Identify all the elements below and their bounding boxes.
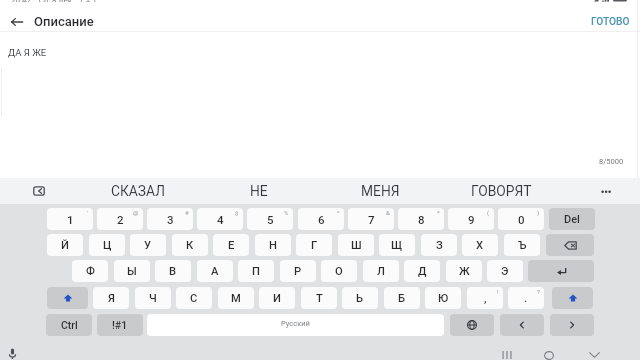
button[interactable]: 4 [197,208,243,230]
button[interactable]: 1 [47,208,93,230]
button[interactable]: М [218,287,254,309]
staticText: # [185,209,189,216]
button[interactable]: Ь [342,287,378,309]
button[interactable]: Н [255,234,291,256]
button[interactable]: 2 [97,208,143,230]
button[interactable]: 0 [498,208,544,230]
staticText: ' [87,209,89,216]
button[interactable]: Р [280,260,316,282]
staticText: @ [133,209,139,216]
button[interactable]: Ф [72,260,108,282]
staticText: $ [235,209,239,216]
staticText: П [252,265,260,278]
staticText: 20:47 Ср, 8 дек. ↑↓↑ [11,0,99,2]
staticText: У [144,239,152,252]
staticText: Ц [103,239,112,252]
button[interactable]: Й [47,234,83,256]
button[interactable]: Т [301,287,337,309]
button[interactable]: 8 [398,208,444,230]
button[interactable] [450,314,494,336]
staticText: ? [537,288,540,295]
staticText: * [437,209,440,216]
button[interactable]: Ю [425,287,461,309]
button[interactable]: Е [213,234,249,256]
button[interactable]: Home [535,347,563,360]
button[interactable]: Ш [338,234,374,256]
button[interactable]: 7 [348,208,394,230]
staticText: . [524,292,528,305]
button[interactable]: Recents [492,347,520,360]
button[interactable]: , [467,287,503,309]
staticText: ! [497,288,499,295]
button[interactable]: НЕ [204,178,314,204]
button[interactable] [546,234,594,256]
button[interactable]: Ctrl [46,314,92,336]
button[interactable]: Русский [147,314,444,336]
button[interactable]: Back [580,347,608,360]
staticText: НЕ [250,183,268,199]
staticText: 4 [217,213,224,226]
button[interactable]: МЕНЯ [325,178,435,204]
staticText: Ъ [518,239,527,252]
button[interactable]: СКАЗАЛ [83,178,193,204]
button[interactable]: О [321,260,357,282]
button[interactable]: Г [296,234,332,256]
staticText: 9 [468,213,475,226]
button[interactable]: 5 [247,208,293,230]
staticText: !#1 [112,319,128,331]
button[interactable]: ГОТОВО [585,12,636,32]
button[interactable]: И [259,287,295,309]
button[interactable]: Back [8,13,25,30]
staticText: З [436,239,443,252]
button[interactable]: Щ [379,234,415,256]
button[interactable]: Э [487,260,523,282]
staticText: % [284,209,289,216]
button[interactable]: 3 [147,208,193,230]
button[interactable] [550,314,594,336]
button[interactable]: Previous suggestions [33,186,45,196]
staticText: , [484,292,487,305]
button[interactable]: В [155,260,191,282]
button[interactable] [528,260,594,282]
staticText: 3 [167,213,174,226]
button[interactable]: . [508,287,544,309]
button[interactable]: У [130,234,166,256]
button[interactable]: К [172,234,208,256]
button[interactable]: 6 [298,208,344,230]
staticText: 5 [267,213,274,226]
staticText: Э [501,265,509,278]
button[interactable]: Ж [446,260,482,282]
button[interactable]: Ч [135,287,171,309]
button[interactable]: П [238,260,274,282]
button[interactable]: Ы [114,260,150,282]
button[interactable]: С [176,287,212,309]
staticText: Ш [351,239,362,252]
staticText: Р [294,265,302,278]
staticText: В [169,265,177,278]
button[interactable]: Ц [89,234,125,256]
button[interactable]: Б [384,287,420,309]
button[interactable]: 9 [448,208,494,230]
button[interactable]: Del [549,208,595,230]
button[interactable]: !#1 [97,314,143,336]
button[interactable]: Л [363,260,399,282]
button[interactable]: ГОВОРЯТ [446,178,556,204]
staticText: ^ [337,209,340,216]
staticText: ) [537,209,540,216]
button[interactable]: Ъ [504,234,540,256]
button[interactable]: З [421,234,457,256]
button[interactable]: Х [462,234,498,256]
staticText: С [190,292,198,305]
staticText: Т [316,292,323,305]
button[interactable] [47,287,88,309]
button[interactable]: А [197,260,233,282]
button[interactable]: Я [93,287,129,309]
button[interactable]: Voice input [5,346,19,360]
button[interactable] [552,287,593,309]
staticText: МЕНЯ [361,183,400,199]
staticText: Ctrl [61,319,78,331]
button[interactable]: Д [404,260,440,282]
staticText: 8/5000 [599,157,624,166]
button[interactable]: More options [592,182,612,202]
button[interactable] [500,314,544,336]
